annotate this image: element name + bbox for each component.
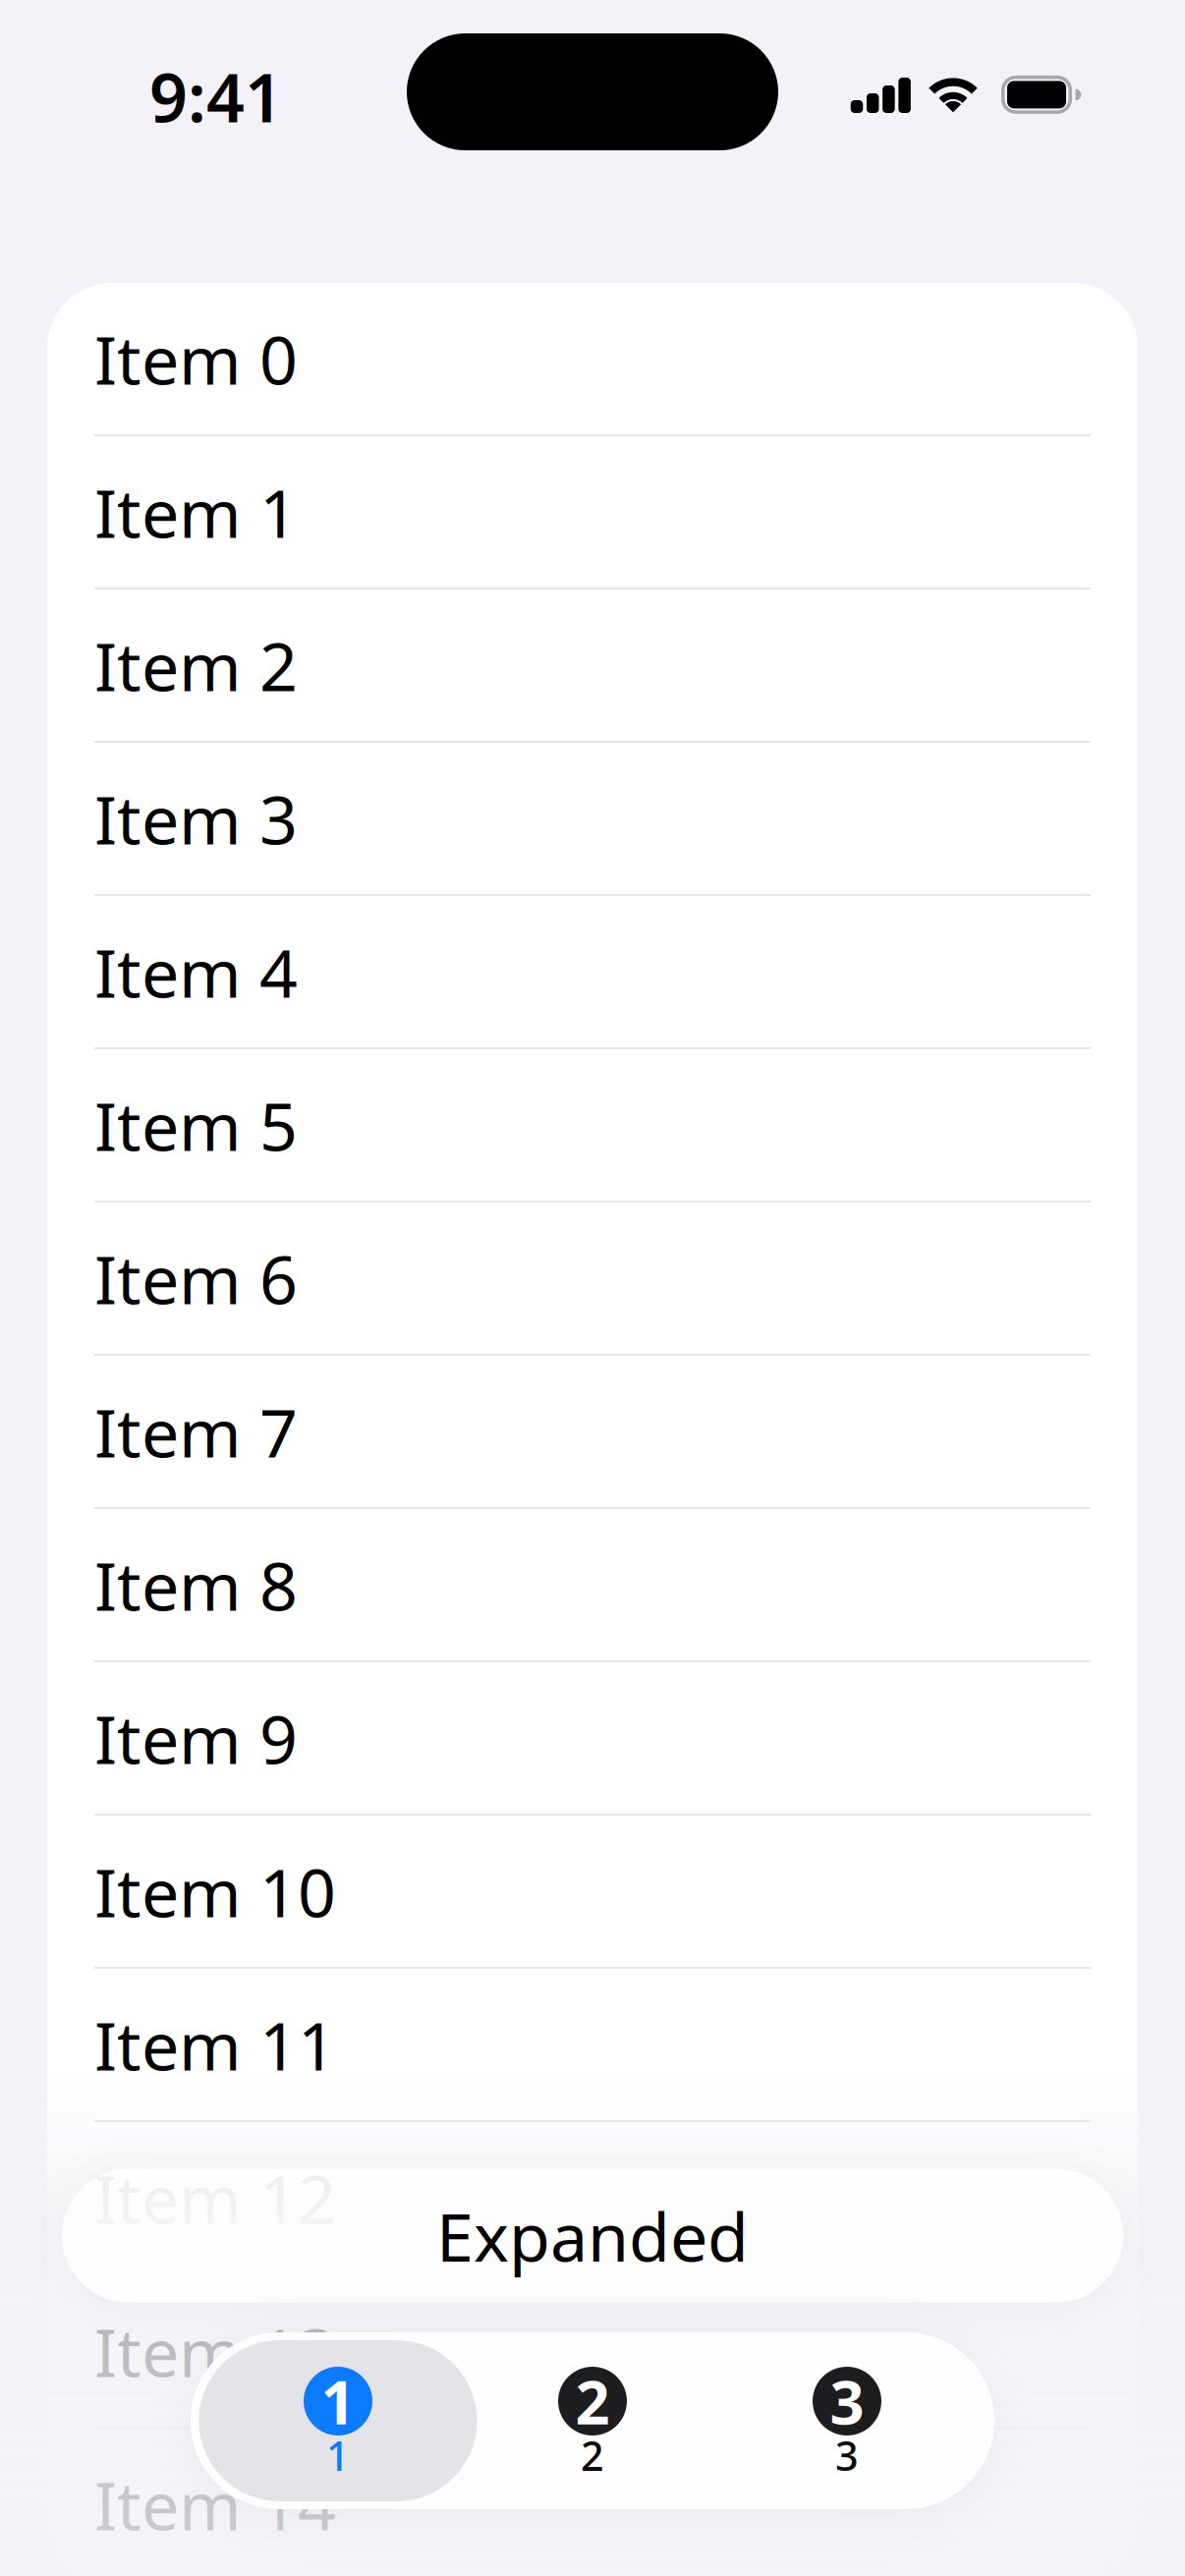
button[interactable]: Item 4 <box>47 896 1138 1047</box>
staticText: Item 6 <box>94 1234 298 1322</box>
button[interactable]: 2 <box>494 2356 691 2486</box>
button[interactable]: 1 <box>199 2340 477 2501</box>
staticText: Item 11 <box>94 2000 336 2089</box>
staticText: 2 <box>575 2361 610 2441</box>
staticText: Item 10 <box>94 1847 336 1936</box>
button[interactable]: Expanded <box>62 2169 1123 2302</box>
staticText: Item 2 <box>94 621 298 709</box>
staticText: Item 14 <box>94 2460 336 2549</box>
staticText: Item 4 <box>94 927 298 1016</box>
staticText: Item 8 <box>94 1540 298 1629</box>
button[interactable]: Item 12 <box>47 2122 1138 2273</box>
button[interactable]: Item 2 <box>47 589 1138 741</box>
button[interactable]: Item 7 <box>47 1356 1138 1507</box>
staticText: Item 7 <box>94 1387 298 1476</box>
staticText: 1 <box>321 2361 355 2441</box>
button[interactable]: 3 <box>749 2356 945 2486</box>
staticText: Item 0 <box>94 314 298 403</box>
button[interactable]: Item 5 <box>47 1049 1138 1201</box>
staticText: Item 3 <box>94 774 298 863</box>
button[interactable]: Item 6 <box>47 1203 1138 1354</box>
staticText: Item 12 <box>94 2153 336 2242</box>
button[interactable]: Item 0 <box>47 283 1138 434</box>
button[interactable]: Item 14 <box>47 2429 1138 2576</box>
staticText: Item 9 <box>94 1694 298 1782</box>
button[interactable]: Item 3 <box>47 743 1138 894</box>
staticText: 2 <box>581 2428 604 2482</box>
staticText: 1 <box>326 2428 350 2482</box>
button[interactable]: Item 10 <box>47 1816 1138 1967</box>
staticText: Expanded <box>436 2191 749 2280</box>
staticText: 3 <box>835 2428 859 2482</box>
staticText: Item 5 <box>94 1081 298 1169</box>
button[interactable]: Item 13 <box>47 2275 1138 2427</box>
button[interactable]: Item 9 <box>47 1662 1138 1814</box>
button[interactable]: Item 1 <box>47 436 1138 588</box>
staticText: Item 13 <box>94 2307 336 2395</box>
button[interactable]: Item 8 <box>47 1509 1138 1660</box>
staticText: Item 1 <box>94 467 298 556</box>
staticText: 3 <box>830 2361 864 2441</box>
staticText: 9:41 <box>149 52 283 141</box>
button[interactable]: Item 11 <box>47 1969 1138 2120</box>
